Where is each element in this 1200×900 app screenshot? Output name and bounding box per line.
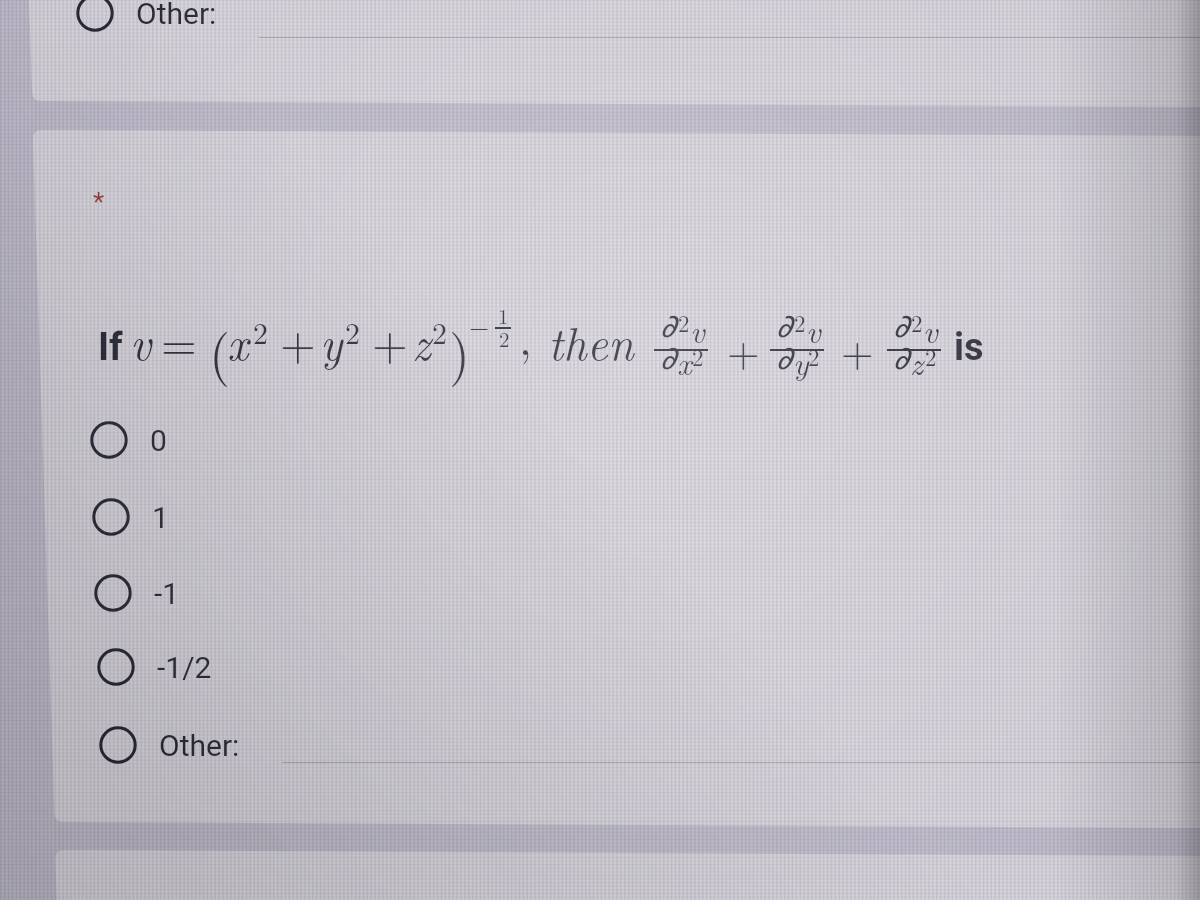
staticText: + xyxy=(841,320,874,380)
staticText: 2 xyxy=(808,340,820,373)
staticText: ∂ xyxy=(893,339,910,376)
staticText: 1 xyxy=(498,300,509,330)
staticText: v xyxy=(690,307,705,352)
staticText: then xyxy=(548,308,634,373)
staticText: + xyxy=(280,308,316,373)
staticText: 1 xyxy=(152,500,169,535)
staticText: 2 xyxy=(692,340,704,373)
staticText: 0 xyxy=(150,423,167,458)
staticText: 2 xyxy=(911,306,923,339)
staticText: ( xyxy=(209,312,231,389)
staticText: x xyxy=(227,308,249,373)
staticText: * xyxy=(93,187,105,217)
staticText: -1 xyxy=(154,576,180,611)
staticText: + xyxy=(372,308,408,373)
button[interactable]: Option -1/2 xyxy=(96,643,1200,691)
staticText: ) xyxy=(449,312,471,389)
staticText: = xyxy=(161,308,197,373)
staticText: 2 xyxy=(678,306,690,339)
button[interactable]: Option Other: xyxy=(98,721,1200,769)
staticText: 2 xyxy=(499,323,510,353)
staticText: -1/2 xyxy=(157,650,212,685)
staticText: x xyxy=(677,339,692,384)
button[interactable]: Option Other: xyxy=(75,0,1195,37)
staticText: z xyxy=(910,339,924,384)
staticText: ∂ xyxy=(893,307,910,344)
staticText: y xyxy=(320,308,343,373)
staticText: v xyxy=(806,307,821,352)
staticText: ∂ xyxy=(776,307,793,344)
staticText: 2 xyxy=(432,310,447,353)
staticText: ∂ xyxy=(660,339,677,376)
staticText: − xyxy=(469,307,490,344)
staticText: v xyxy=(923,307,938,352)
staticText: 2 xyxy=(925,340,937,373)
staticText: 2 xyxy=(345,310,360,353)
staticText: is xyxy=(954,325,984,370)
staticText: ∂ xyxy=(660,307,677,344)
staticText: + xyxy=(727,320,760,380)
staticText: Other: xyxy=(159,728,240,763)
staticText: 2 xyxy=(253,310,268,353)
staticText: Other: xyxy=(136,0,217,31)
staticText: 2 xyxy=(794,306,806,339)
staticText: y xyxy=(793,339,809,384)
button[interactable]: Option 1 xyxy=(91,493,1200,541)
staticText: z xyxy=(412,308,431,373)
staticText: v xyxy=(130,308,152,373)
button[interactable]: Option 0 xyxy=(89,416,1200,464)
staticText: If xyxy=(98,325,123,370)
staticText: ∂ xyxy=(776,339,793,376)
button[interactable]: Option -1 xyxy=(93,569,1200,617)
staticText: , xyxy=(519,303,532,368)
